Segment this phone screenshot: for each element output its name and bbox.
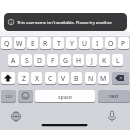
staticText: next [109, 93, 119, 99]
staticText: K [102, 56, 107, 65]
staticText: S [25, 56, 29, 65]
staticText: V [61, 74, 66, 83]
staticText: R [43, 39, 48, 48]
staticText: Q [4, 39, 10, 48]
staticText: G [63, 56, 68, 65]
staticText: This username isn't available. Please tr… [17, 20, 113, 26]
staticText: I [96, 39, 99, 48]
staticText: space [58, 93, 73, 100]
staticText: O [108, 39, 114, 48]
staticText: U [82, 39, 87, 48]
staticText: L [116, 56, 120, 65]
staticText: B [74, 74, 79, 83]
staticText: X [35, 74, 39, 83]
staticText: C [48, 74, 53, 83]
staticText: N [88, 74, 94, 83]
staticText: P [121, 39, 126, 48]
staticText: J [91, 56, 93, 65]
staticText: W [16, 39, 23, 48]
staticText: Z [22, 74, 26, 83]
staticText: M [100, 74, 107, 83]
staticText: D [37, 56, 42, 65]
staticText: F [51, 56, 55, 65]
staticText: T [57, 39, 61, 48]
staticText: E [31, 39, 35, 48]
staticText: 123 [5, 94, 12, 99]
staticText: Y [70, 39, 74, 48]
staticText: A [11, 56, 16, 65]
staticText: H [76, 56, 82, 65]
